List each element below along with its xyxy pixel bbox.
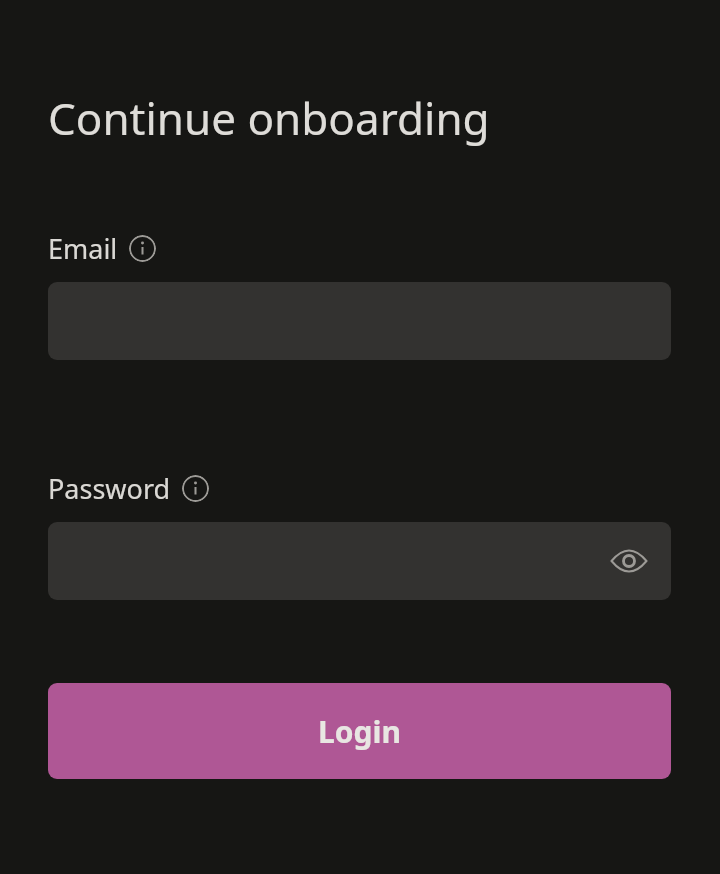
staticText: Email [48,230,118,267]
staticText: Login [318,711,401,752]
button[interactable]: Email information [129,235,156,262]
button[interactable]: Login [48,683,671,779]
button[interactable]: Password information [182,475,209,502]
button[interactable]: Password input field [48,522,671,600]
staticText: Continue onboarding [48,88,490,148]
button[interactable]: Show password [607,539,651,583]
staticText: Password [48,470,171,507]
